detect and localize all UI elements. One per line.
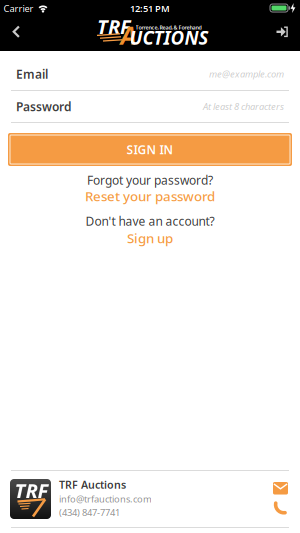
button[interactable]: Password: [0, 91, 300, 122]
staticText: Carrier: [3, 2, 33, 15]
staticText: 12:51 PM: [130, 2, 170, 15]
staticText: Forgot your password?: [87, 172, 213, 188]
staticText: Password: [16, 98, 72, 114]
staticText: Sign up: [127, 229, 173, 247]
button[interactable]: Back: [0, 16, 34, 51]
staticText: TRF Auctions: [59, 477, 126, 492]
staticText: info@trfauctions.com: [59, 493, 152, 505]
button[interactable]: Call TRF Auctions: [273, 501, 288, 516]
staticText: Don't have an account?: [85, 213, 214, 229]
button[interactable]: Reset your password: [85, 188, 215, 204]
button[interactable]: SIGN IN: [8, 133, 292, 166]
staticText: At least 8 characters: [203, 100, 284, 113]
staticText: TRF: [97, 13, 131, 40]
button[interactable]: Sign in: [264, 16, 300, 51]
staticText: UCTIONS: [129, 25, 208, 50]
button[interactable]: Sign up: [127, 230, 173, 246]
button[interactable]: Email TRF Auctions: [273, 482, 288, 495]
staticText: Email: [16, 66, 48, 82]
staticText: A: [120, 18, 136, 52]
staticText: TRF: [14, 477, 48, 504]
staticText: me@example.com: [209, 68, 284, 80]
staticText: (434) 847-7741: [59, 506, 120, 518]
staticText: SIGN IN: [126, 141, 173, 157]
button[interactable]: Email: [0, 58, 300, 90]
staticText: Torrence, Read, & Forehand: [135, 24, 201, 31]
staticText: Reset your password: [85, 187, 215, 205]
